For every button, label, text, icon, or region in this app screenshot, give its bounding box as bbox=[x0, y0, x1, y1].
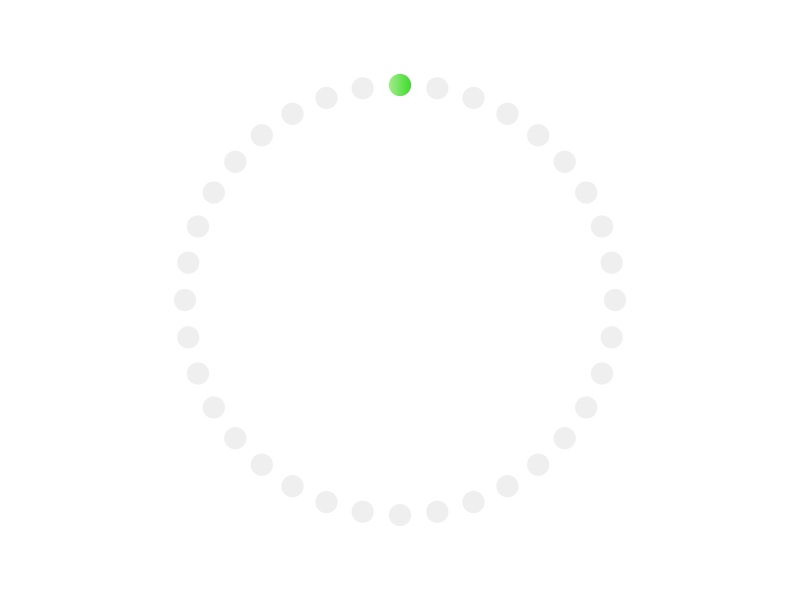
group: Step 1 of 36 bbox=[174, 74, 626, 526]
